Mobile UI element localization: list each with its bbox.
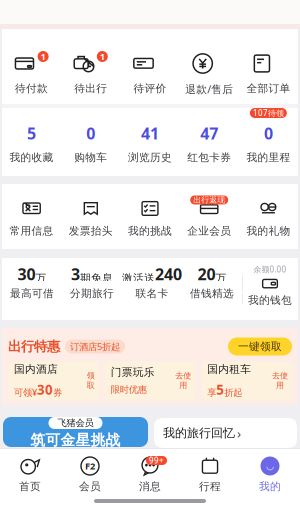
staticText: 享 bbox=[207, 387, 216, 398]
staticText: 用 bbox=[276, 380, 284, 390]
staticText: 107待领 bbox=[253, 108, 284, 118]
staticText: 常用信息 bbox=[10, 224, 54, 237]
staticText: 5 bbox=[216, 381, 224, 398]
staticText: 退款/售后 bbox=[185, 82, 233, 96]
staticText: 我的礼物 bbox=[246, 224, 290, 237]
staticText: 0 bbox=[264, 123, 273, 144]
staticText: 领 bbox=[87, 371, 95, 380]
staticText: 可领¥ bbox=[14, 386, 37, 398]
staticText: 去使 bbox=[175, 371, 191, 380]
staticText: 国内租车 bbox=[207, 363, 251, 376]
staticText: 出行返现 bbox=[193, 195, 225, 205]
button[interactable]: 我的挑战 bbox=[120, 195, 180, 237]
button[interactable]: ◡ bbox=[240, 456, 300, 493]
staticText: 一键领取 bbox=[238, 340, 282, 353]
staticText: 发票抬头 bbox=[69, 224, 113, 237]
staticText: 激活送 bbox=[122, 271, 155, 285]
staticText: 99+ bbox=[149, 455, 164, 466]
staticText: 待评价 bbox=[133, 82, 166, 95]
staticText: 1 bbox=[41, 50, 46, 63]
staticText: 3 bbox=[71, 263, 80, 285]
button[interactable]: 1 bbox=[61, 29, 120, 104]
button[interactable]: 47 bbox=[180, 108, 239, 176]
staticText: 浏览历史 bbox=[128, 151, 172, 164]
staticText: 20 bbox=[197, 263, 215, 285]
button[interactable]: 门票玩乐 bbox=[105, 361, 195, 399]
button[interactable]: 0 bbox=[239, 108, 298, 176]
button[interactable]: 行程 bbox=[180, 456, 240, 493]
staticText: 购物车 bbox=[74, 151, 107, 164]
staticText: 去使 bbox=[272, 371, 288, 380]
staticText: 用 bbox=[179, 380, 187, 390]
staticText: 万 bbox=[215, 271, 226, 285]
button[interactable]: 退款/售后 bbox=[180, 29, 239, 104]
button[interactable]: 余额0.00 bbox=[242, 258, 298, 320]
staticText: 订酒店5折起 bbox=[70, 340, 120, 353]
button[interactable]: 41 bbox=[120, 108, 180, 176]
staticText: 行程 bbox=[199, 480, 221, 493]
staticText: 企业会员 bbox=[187, 224, 231, 237]
button[interactable]: 99+ bbox=[120, 456, 180, 493]
staticText: 余额0.00 bbox=[253, 264, 286, 275]
staticText: 47 bbox=[200, 123, 218, 144]
button[interactable]: 全部订单 bbox=[239, 29, 298, 104]
staticText: 筑可金星挑战 bbox=[30, 431, 120, 449]
staticText: 出行特惠 bbox=[8, 338, 60, 355]
staticText: 待出行 bbox=[74, 82, 107, 95]
staticText: 万 bbox=[35, 271, 46, 285]
button[interactable]: 30 bbox=[2, 258, 62, 320]
staticText: 券 bbox=[53, 387, 62, 398]
button[interactable]: 20 bbox=[182, 258, 242, 320]
staticText: 首页 bbox=[19, 480, 41, 493]
staticText: ◡ bbox=[266, 461, 273, 471]
staticText: 借钱精选 bbox=[190, 287, 234, 300]
staticText: 41 bbox=[141, 123, 159, 144]
staticText: 我的 bbox=[259, 480, 281, 493]
button[interactable]: 待评价 bbox=[120, 29, 180, 104]
button[interactable]: 出行返现 bbox=[180, 195, 239, 237]
button[interactable]: 发票抬头 bbox=[61, 195, 120, 237]
staticText: 会员 bbox=[79, 480, 101, 493]
button[interactable]: 常用信息 bbox=[2, 195, 61, 237]
button[interactable]: 一键领取 bbox=[228, 337, 292, 355]
staticText: 飞猪会员 bbox=[57, 417, 93, 429]
button[interactable]: 1 bbox=[2, 29, 61, 104]
staticText: 最高可借 bbox=[10, 287, 54, 300]
staticText: 5 bbox=[27, 123, 36, 144]
staticText: 240 bbox=[155, 263, 182, 285]
staticText: 30 bbox=[17, 263, 35, 285]
staticText: 国内酒店 bbox=[14, 363, 58, 376]
staticText: 取 bbox=[87, 380, 95, 390]
staticText: 1 bbox=[100, 50, 105, 63]
button[interactable]: 0 bbox=[61, 108, 120, 176]
staticText: 0 bbox=[86, 123, 95, 144]
staticText: 期免息 bbox=[80, 271, 113, 285]
staticText: 30 bbox=[37, 381, 53, 398]
button[interactable]: 我的礼物 bbox=[239, 195, 298, 237]
staticText: 分期旅行 bbox=[70, 287, 114, 300]
button[interactable]: 国内租车 bbox=[201, 361, 292, 399]
staticText: 待付款 bbox=[15, 82, 48, 95]
button[interactable]: F2 bbox=[60, 456, 120, 493]
staticText: 我的里程 bbox=[246, 151, 290, 164]
staticText: 我的旅行回忆 bbox=[163, 426, 235, 440]
staticText: 联名卡 bbox=[135, 287, 168, 300]
button[interactable]: 我的旅行回忆 bbox=[154, 418, 297, 448]
staticText: 我的钱包 bbox=[248, 294, 292, 307]
staticText: F2 bbox=[85, 460, 95, 472]
button[interactable]: 国内酒店 bbox=[8, 361, 99, 399]
button[interactable]: 3 bbox=[62, 258, 122, 320]
staticText: 红包卡券 bbox=[187, 151, 231, 164]
staticText: 消息 bbox=[139, 480, 161, 493]
staticText: › bbox=[237, 424, 241, 442]
staticText: 折起 bbox=[224, 387, 242, 398]
staticText: 全部订单 bbox=[246, 82, 290, 95]
staticText: 门票玩乐 bbox=[111, 366, 155, 379]
staticText: 我的挑战 bbox=[128, 224, 172, 237]
button[interactable]: 激活送 bbox=[122, 258, 182, 320]
staticText: 限时优惠 bbox=[111, 384, 147, 395]
staticText: 我的收藏 bbox=[10, 151, 54, 164]
button[interactable]: 首页 bbox=[0, 456, 60, 493]
button[interactable]: 5 bbox=[2, 108, 61, 176]
